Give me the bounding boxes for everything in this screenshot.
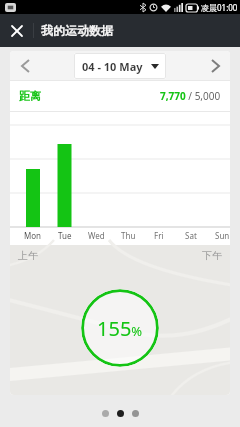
staticText: 04 - 10 May <box>82 59 143 74</box>
staticText: 距离 <box>19 89 41 103</box>
staticText: 我的运动数据 <box>41 23 113 38</box>
staticText: 上午 <box>18 249 38 262</box>
staticText: Sat <box>185 230 197 241</box>
staticText: 凌晨01:00 <box>201 2 238 13</box>
staticText: Mon <box>24 230 42 241</box>
staticText: 155% <box>97 315 143 342</box>
staticText: Fri <box>154 230 164 241</box>
button[interactable] <box>200 51 230 80</box>
button[interactable]: 04 - 10 May <box>74 53 166 79</box>
button[interactable] <box>10 51 40 80</box>
staticText: Thu <box>121 230 136 241</box>
button[interactable] <box>0 14 33 47</box>
staticText: Sun <box>215 230 230 241</box>
staticText: 7,770 / 5,000 <box>160 89 221 103</box>
staticText: Wed <box>88 230 105 241</box>
staticText: Tue <box>58 230 72 241</box>
staticText: 下午 <box>202 249 222 262</box>
